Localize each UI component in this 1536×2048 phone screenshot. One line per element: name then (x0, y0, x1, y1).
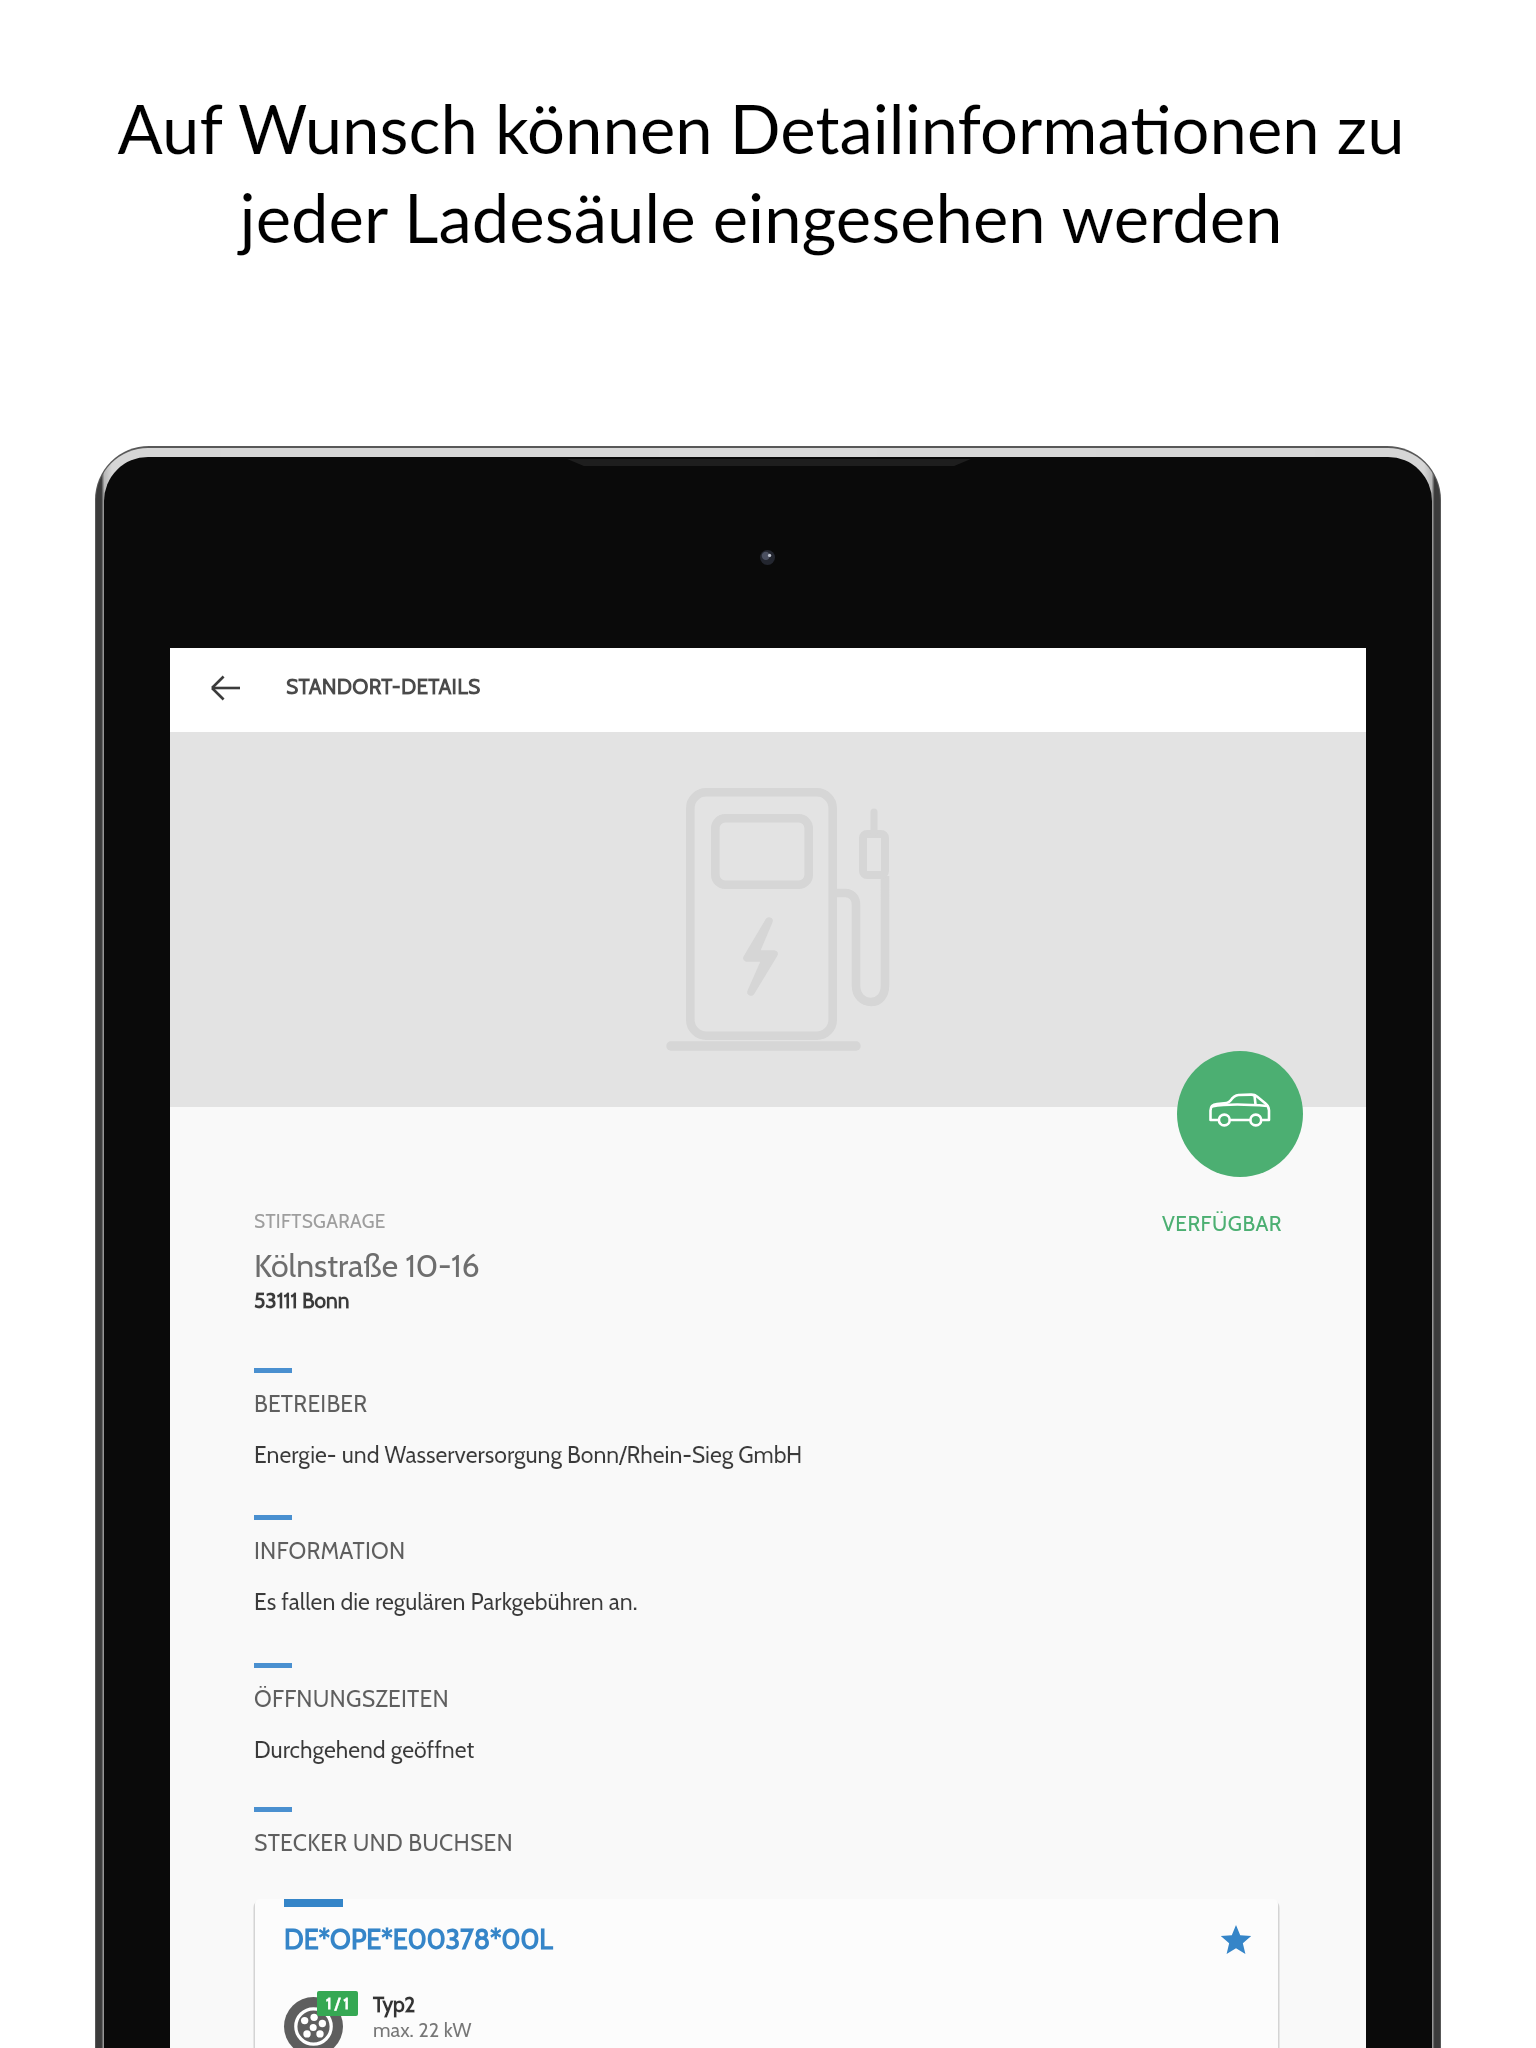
staticText: BETREIBER (254, 1390, 368, 1418)
staticText: Typ2 (373, 1992, 416, 2018)
staticText: STANDORT-DETAILS (286, 674, 481, 700)
staticText: Auf Wunsch können Detailinformationen zu… (46, 88, 1476, 257)
button[interactable]: Favorit (1220, 1925, 1252, 1957)
staticText: Energie- und Wasserversorgung Bonn/Rhein… (254, 1441, 803, 1469)
staticText: STECKER UND BUCHSEN (254, 1829, 513, 1857)
staticText: max. 22 kW (373, 2018, 472, 2042)
button[interactable]: DE*OPE*E00378*00L (255, 1899, 1278, 2048)
staticText: INFORMATION (254, 1537, 406, 1565)
staticText: STIFTSGARAGE (254, 1210, 386, 1233)
button[interactable]: Fahrzeug verfügbar (1177, 1051, 1303, 1177)
staticText: Durchgehend geöffnet (254, 1736, 475, 1764)
staticText: VERFÜGBAR (1132, 1211, 1312, 1237)
staticText: 1 / 1 (326, 1994, 349, 2013)
staticText: DE*OPE*E00378*00L (284, 1923, 553, 1956)
staticText: Kölnstraße 10-16 (254, 1246, 480, 1285)
staticText: Es fallen die regulären Parkgebühren an. (254, 1588, 638, 1616)
button[interactable]: Zurück (200, 662, 252, 714)
staticText: ÖFFNUNGSZEITEN (254, 1685, 449, 1713)
staticText: 53111 Bonn (254, 1288, 350, 1314)
